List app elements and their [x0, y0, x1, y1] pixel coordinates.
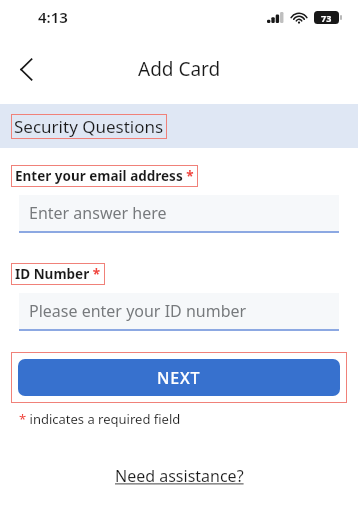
button[interactable]: Back [4, 47, 48, 91]
staticText: Enter your email address * [15, 167, 194, 185]
staticText: 73 [321, 12, 332, 24]
staticText: Security Questions [14, 115, 164, 138]
staticText: Please enter your ID number [29, 300, 247, 322]
staticText: NEXT [157, 367, 201, 389]
staticText: 4:13 [38, 7, 68, 27]
button[interactable]: Please enter your ID number [19, 293, 339, 331]
staticText: ID Number * [15, 265, 101, 283]
button[interactable]: Need assistance? [107, 460, 252, 492]
button[interactable]: Enter answer here [19, 195, 339, 233]
staticText: Add Card [138, 56, 221, 82]
button[interactable]: NEXT [18, 359, 340, 396]
staticText: Need assistance? [115, 465, 244, 487]
staticText: Enter answer here [29, 202, 167, 224]
staticText: * indicates a required field [19, 410, 181, 428]
